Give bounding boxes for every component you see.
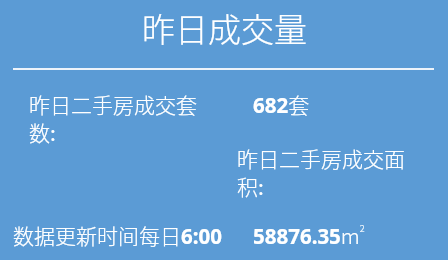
staticText: 数据更新时间每日6:00 — [13, 220, 222, 250]
staticText: 58876.35m2 — [253, 220, 365, 250]
button[interactable]: 682套 — [237, 80, 434, 142]
button[interactable]: 昨日二手房成交套数: — [13, 80, 224, 142]
staticText: 昨日二手房成交套数: — [29, 89, 209, 147]
staticText: 682套 — [253, 89, 310, 119]
button[interactable]: 昨日二手房成交面积: — [237, 134, 434, 196]
button[interactable]: 数据更新时间每日6:00 — [0, 211, 237, 260]
button[interactable]: 昨日成交量 — [0, 0, 448, 260]
staticText: 昨日二手房成交面积: — [237, 143, 417, 201]
button[interactable]: 昨日成交量 — [0, 0, 448, 68]
staticText: 昨日成交量 — [142, 4, 307, 52]
button[interactable]: 58876.35m2 — [237, 211, 448, 260]
